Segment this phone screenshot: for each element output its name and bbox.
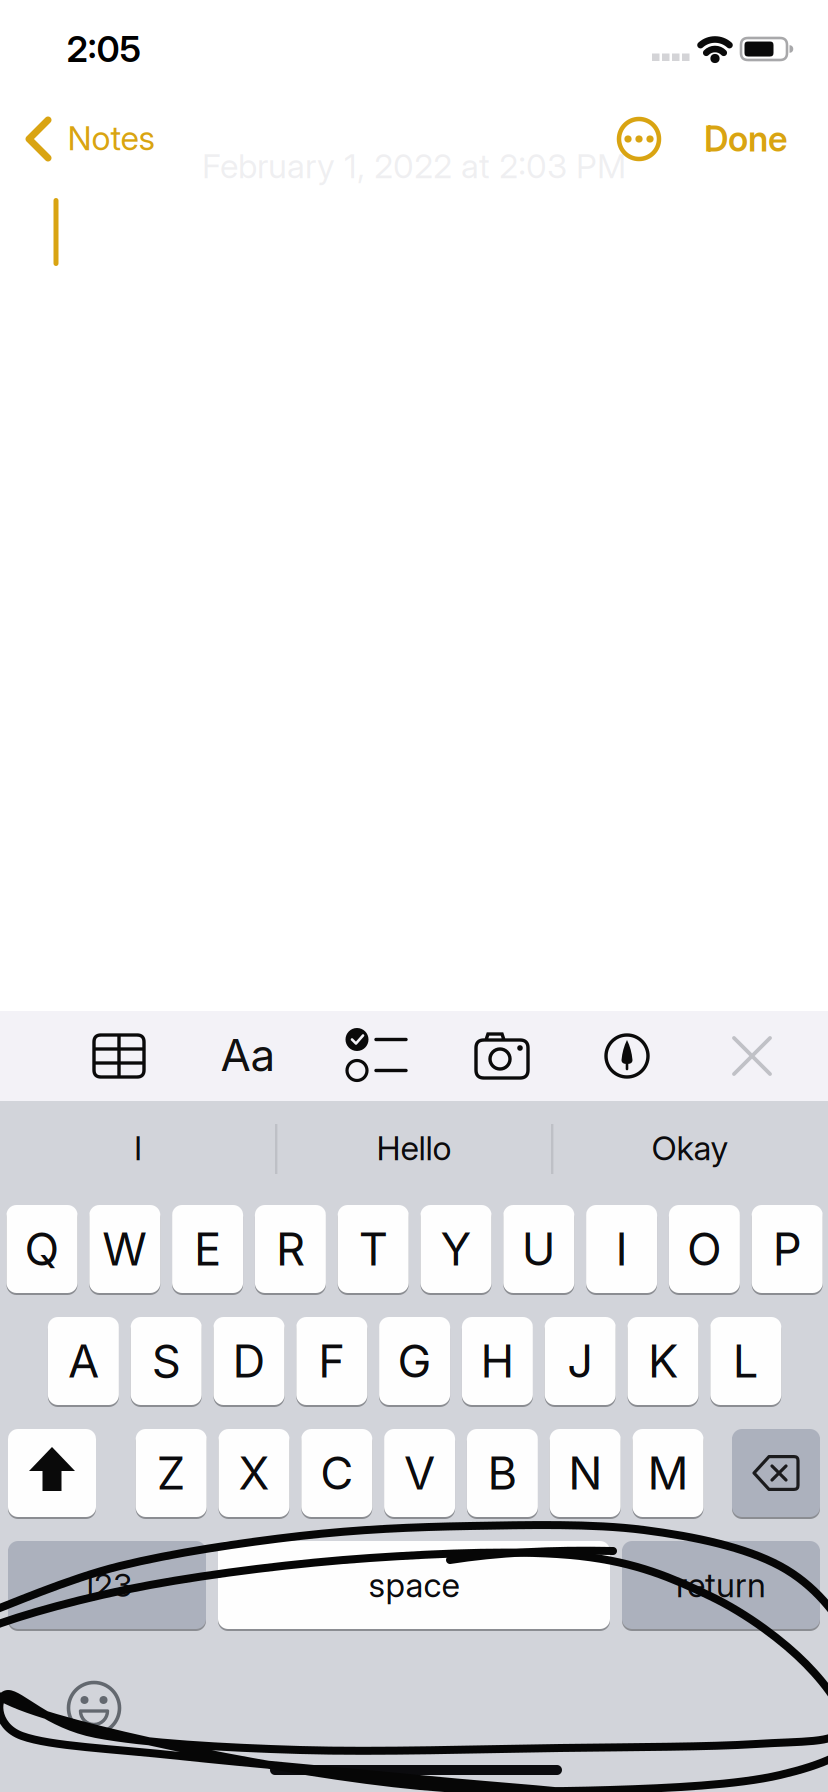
button[interactable]: A bbox=[48, 1316, 119, 1406]
staticText: return bbox=[676, 1565, 766, 1605]
button[interactable]: C bbox=[301, 1428, 372, 1518]
button[interactable]: I bbox=[3, 1102, 273, 1194]
button[interactable]: D bbox=[213, 1316, 284, 1406]
staticText: G bbox=[398, 1334, 432, 1388]
button[interactable]: T bbox=[338, 1204, 409, 1294]
button[interactable]: W bbox=[89, 1204, 160, 1294]
button[interactable]: F bbox=[296, 1316, 367, 1406]
staticText: I bbox=[134, 1128, 142, 1168]
staticText: X bbox=[238, 1446, 269, 1500]
staticText: Q bbox=[24, 1222, 59, 1276]
button[interactable]: Back to Notes bbox=[26, 107, 176, 171]
staticText: I bbox=[616, 1222, 628, 1276]
staticText: Y bbox=[440, 1222, 471, 1276]
button[interactable]: P bbox=[752, 1204, 823, 1294]
staticText: L bbox=[733, 1334, 759, 1388]
button[interactable]: 123 bbox=[8, 1540, 206, 1630]
button[interactable]: Okay bbox=[555, 1102, 825, 1194]
staticText: Z bbox=[157, 1446, 186, 1500]
staticText: F bbox=[318, 1334, 345, 1388]
button[interactable]: Text formatting bbox=[208, 1025, 288, 1085]
button[interactable]: Done bbox=[666, 111, 826, 167]
staticText: S bbox=[152, 1334, 181, 1388]
staticText: V bbox=[404, 1446, 435, 1500]
button[interactable]: N bbox=[550, 1428, 621, 1518]
staticText: M bbox=[647, 1446, 688, 1500]
button[interactable]: Emoji bbox=[66, 1680, 122, 1736]
button[interactable]: X bbox=[218, 1428, 289, 1518]
button[interactable]: O bbox=[669, 1204, 740, 1294]
staticText: 123 bbox=[82, 1566, 132, 1604]
button[interactable]: G bbox=[379, 1316, 450, 1406]
button[interactable]: Insert table bbox=[92, 1033, 146, 1079]
staticText: H bbox=[480, 1334, 514, 1388]
button[interactable]: space bbox=[218, 1540, 610, 1630]
staticText: J bbox=[567, 1334, 593, 1388]
button[interactable]: Markup bbox=[604, 1033, 650, 1079]
button[interactable]: B bbox=[467, 1428, 538, 1518]
button[interactable]: Checklist bbox=[344, 1028, 408, 1081]
staticText: R bbox=[276, 1222, 305, 1276]
button[interactable]: Delete bbox=[732, 1428, 820, 1518]
button[interactable]: Z bbox=[136, 1428, 207, 1518]
button[interactable]: J bbox=[545, 1316, 616, 1406]
button[interactable]: S bbox=[131, 1316, 202, 1406]
staticText: C bbox=[320, 1446, 353, 1500]
button[interactable]: K bbox=[627, 1316, 698, 1406]
staticText: T bbox=[359, 1222, 388, 1276]
button[interactable]: U bbox=[503, 1204, 574, 1294]
staticText: A bbox=[68, 1334, 99, 1388]
button[interactable]: E bbox=[172, 1204, 243, 1294]
button[interactable]: M bbox=[632, 1428, 703, 1518]
staticText: K bbox=[648, 1334, 678, 1388]
staticText: 2:05 bbox=[66, 28, 141, 70]
staticText: W bbox=[102, 1222, 147, 1276]
staticText: B bbox=[487, 1446, 517, 1500]
button[interactable]: Q bbox=[6, 1204, 77, 1294]
button[interactable]: Insert photo bbox=[474, 1032, 530, 1080]
staticText: February 1, 2022 at 2:03 PM bbox=[202, 146, 626, 186]
button[interactable]: I bbox=[586, 1204, 657, 1294]
staticText: O bbox=[687, 1222, 722, 1276]
button[interactable]: More options bbox=[617, 117, 661, 161]
staticText: Done bbox=[704, 119, 788, 159]
button[interactable]: H bbox=[462, 1316, 533, 1406]
button[interactable]: Y bbox=[420, 1204, 491, 1294]
button[interactable]: Hello bbox=[279, 1102, 549, 1194]
button[interactable]: Dismiss toolbar bbox=[732, 1036, 772, 1076]
staticText: Aa bbox=[220, 1029, 275, 1081]
staticText: space bbox=[368, 1565, 459, 1605]
button[interactable]: V bbox=[384, 1428, 455, 1518]
button[interactable]: Shift bbox=[8, 1428, 96, 1518]
staticText: U bbox=[522, 1222, 556, 1276]
button[interactable]: L bbox=[710, 1316, 781, 1406]
staticText: N bbox=[568, 1446, 602, 1500]
button[interactable]: return bbox=[622, 1540, 820, 1630]
staticText: Hello bbox=[376, 1128, 451, 1168]
staticText: Notes bbox=[67, 118, 155, 158]
staticText: P bbox=[773, 1222, 802, 1276]
button[interactable]: R bbox=[255, 1204, 326, 1294]
staticText: Okay bbox=[651, 1128, 728, 1168]
staticText: E bbox=[194, 1222, 221, 1276]
staticText: D bbox=[232, 1334, 265, 1388]
